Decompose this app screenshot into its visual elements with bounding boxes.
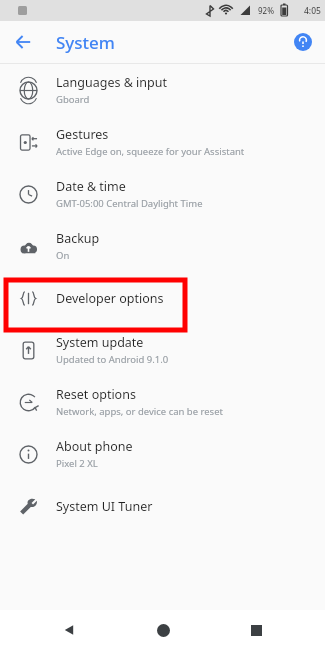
staticText: System update	[56, 334, 144, 351]
staticText: Languages & input	[56, 74, 167, 91]
staticText: System	[56, 31, 115, 54]
staticText: Pixel 2 XL	[56, 457, 98, 470]
staticText: Network, apps, or device can be reset	[56, 405, 223, 418]
button[interactable]: Home	[146, 613, 180, 647]
staticText: Date & time	[56, 178, 126, 195]
button[interactable]: Back	[52, 613, 86, 647]
staticText: About phone	[56, 438, 133, 455]
staticText: System UI Tuner	[56, 498, 153, 515]
button[interactable]: Reset options	[0, 376, 325, 428]
button[interactable]: System update	[0, 324, 325, 376]
staticText: Reset options	[56, 386, 136, 403]
button[interactable]: Backup	[0, 220, 325, 272]
staticText: On	[56, 249, 70, 262]
button[interactable]: Date & time	[0, 168, 325, 220]
staticText: Gestures	[56, 126, 109, 143]
staticText: Active Edge on, squeeze for your Assista…	[56, 145, 245, 158]
staticText: GMT-05:00 Central Daylight Time	[56, 197, 203, 210]
staticText: 4:05	[304, 5, 321, 17]
staticText: Updated to Android 9.1.0	[56, 353, 169, 366]
button[interactable]: Help and feedback	[287, 26, 319, 58]
staticText: Developer options	[56, 290, 164, 307]
staticText: Gboard	[56, 93, 90, 106]
button[interactable]: Gestures	[0, 116, 325, 168]
button[interactable]: Back	[6, 25, 40, 59]
staticText: Backup	[56, 230, 100, 247]
button[interactable]: Languages & input	[0, 64, 325, 116]
button[interactable]: About phone	[0, 428, 325, 480]
button[interactable]: System UI Tuner	[0, 480, 325, 532]
button[interactable]: Developer options	[0, 272, 325, 324]
staticText: 92%	[258, 5, 274, 16]
button[interactable]: Recent apps	[239, 613, 273, 647]
